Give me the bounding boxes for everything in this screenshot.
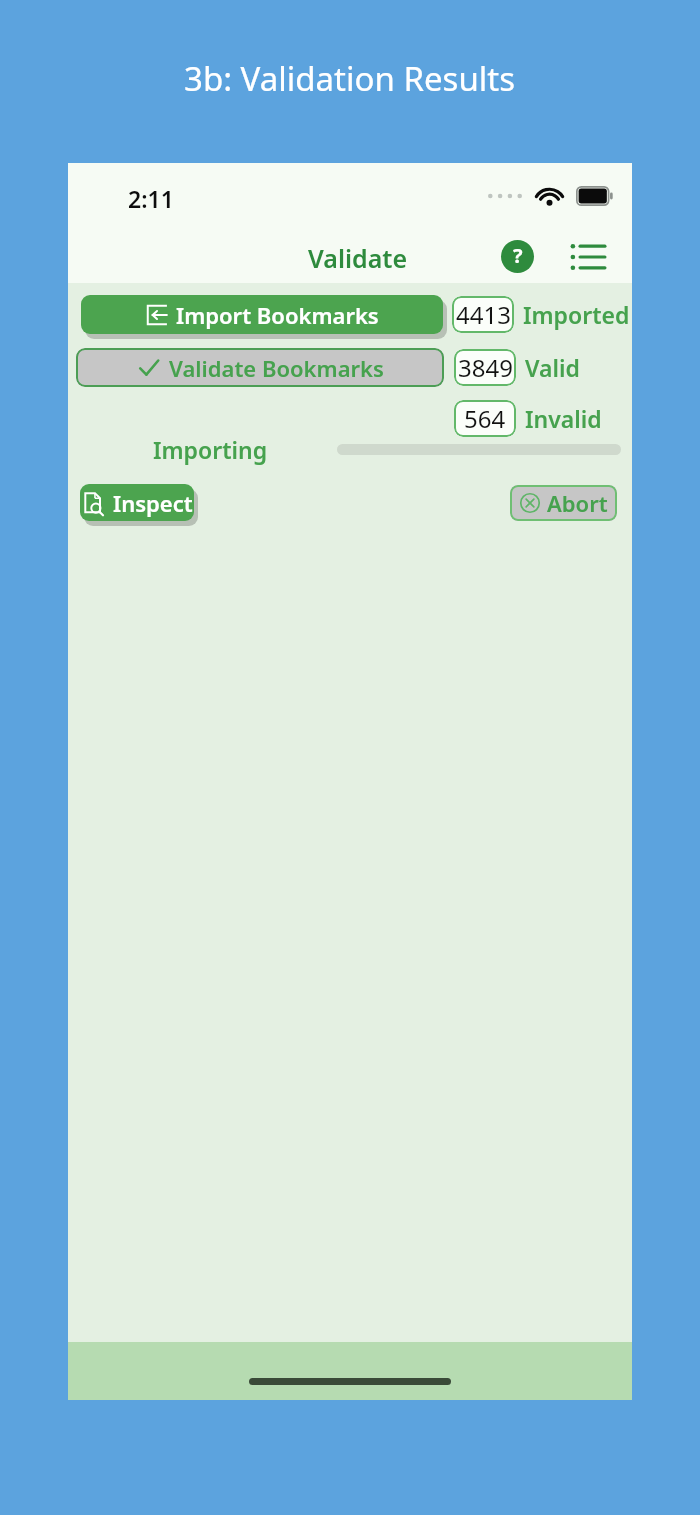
staticText: 3b: Validation Results: [184, 56, 516, 101]
button[interactable]: 4413: [452, 296, 514, 333]
staticText: 564: [464, 402, 506, 435]
staticText: Invalid: [525, 403, 602, 434]
button[interactable]: Show list: [568, 237, 608, 277]
staticText: 3849: [458, 351, 513, 384]
staticText: 4413: [456, 298, 511, 331]
button[interactable]: Help: [498, 237, 536, 275]
staticText: Import Bookmarks: [176, 300, 379, 330]
staticText: Imported: [523, 299, 630, 330]
staticText: Importing: [153, 434, 268, 465]
button[interactable]: Inspect: [80, 484, 194, 521]
staticText: Inspect: [113, 488, 193, 518]
staticText: ?: [513, 242, 523, 269]
button[interactable]: Abort: [510, 485, 617, 521]
button[interactable]: Validate Bookmarks: [76, 348, 444, 387]
button[interactable]: 3849: [454, 349, 516, 386]
staticText: Valid: [525, 352, 580, 383]
staticText: Validate: [308, 241, 408, 275]
button[interactable]: Import Bookmarks: [81, 295, 443, 334]
staticText: Abort: [547, 488, 608, 518]
button[interactable]: 564: [454, 400, 516, 437]
staticText: 2:11: [128, 183, 174, 214]
staticText: Validate Bookmarks: [169, 353, 384, 383]
